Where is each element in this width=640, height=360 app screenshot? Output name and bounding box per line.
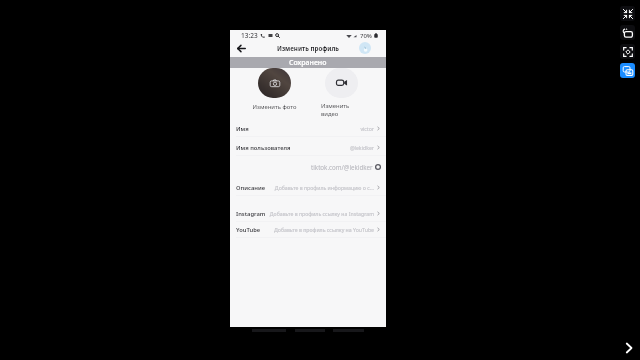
button[interactable]: Fit to screen xyxy=(620,6,635,21)
staticText: @lekidker xyxy=(294,144,374,151)
button[interactable]: Fullscreen xyxy=(620,44,635,59)
button[interactable]: Описание xyxy=(230,179,386,196)
button[interactable]: Изменить видео xyxy=(321,67,362,112)
button[interactable]: Instagram xyxy=(230,205,386,222)
staticText: YouTube xyxy=(236,226,261,234)
button[interactable]: Имя пользователя xyxy=(230,139,386,156)
button[interactable]: Next video xyxy=(619,338,639,358)
staticText: 70% xyxy=(360,32,372,40)
staticText: Instagram xyxy=(236,210,266,218)
button[interactable]: Имя xyxy=(230,120,386,137)
staticText: Изменить фото xyxy=(248,103,301,111)
staticText: Добавьте в профиль ссылку на Instagram xyxy=(269,210,374,217)
staticText: tiktok.com/@lekidker xyxy=(311,163,373,171)
staticText: Добавьте в профиль информацию о с... xyxy=(269,184,374,191)
staticText: victor xyxy=(252,125,374,132)
button[interactable]: YouTube xyxy=(230,221,386,238)
staticText: Сохранено xyxy=(289,58,327,68)
staticText: 13:23 xyxy=(241,31,258,40)
button[interactable]: Picture in picture xyxy=(620,63,635,78)
staticText: Имя пользователя xyxy=(236,144,291,152)
button[interactable]: Rotate screen xyxy=(620,25,635,40)
button[interactable]: Изменить фото xyxy=(248,67,301,112)
button[interactable]: Save profile xyxy=(359,42,371,54)
staticText: Описание xyxy=(236,184,266,192)
staticText: Имя xyxy=(236,125,249,133)
staticText: Добавьте в профиль ссылку на YouTube xyxy=(264,226,374,233)
staticText: Изменить профиль xyxy=(277,44,339,52)
button[interactable]: tiktok.com/@lekidker xyxy=(230,159,386,175)
staticText: Изменить видео xyxy=(321,102,350,117)
button[interactable]: Back xyxy=(234,41,248,55)
